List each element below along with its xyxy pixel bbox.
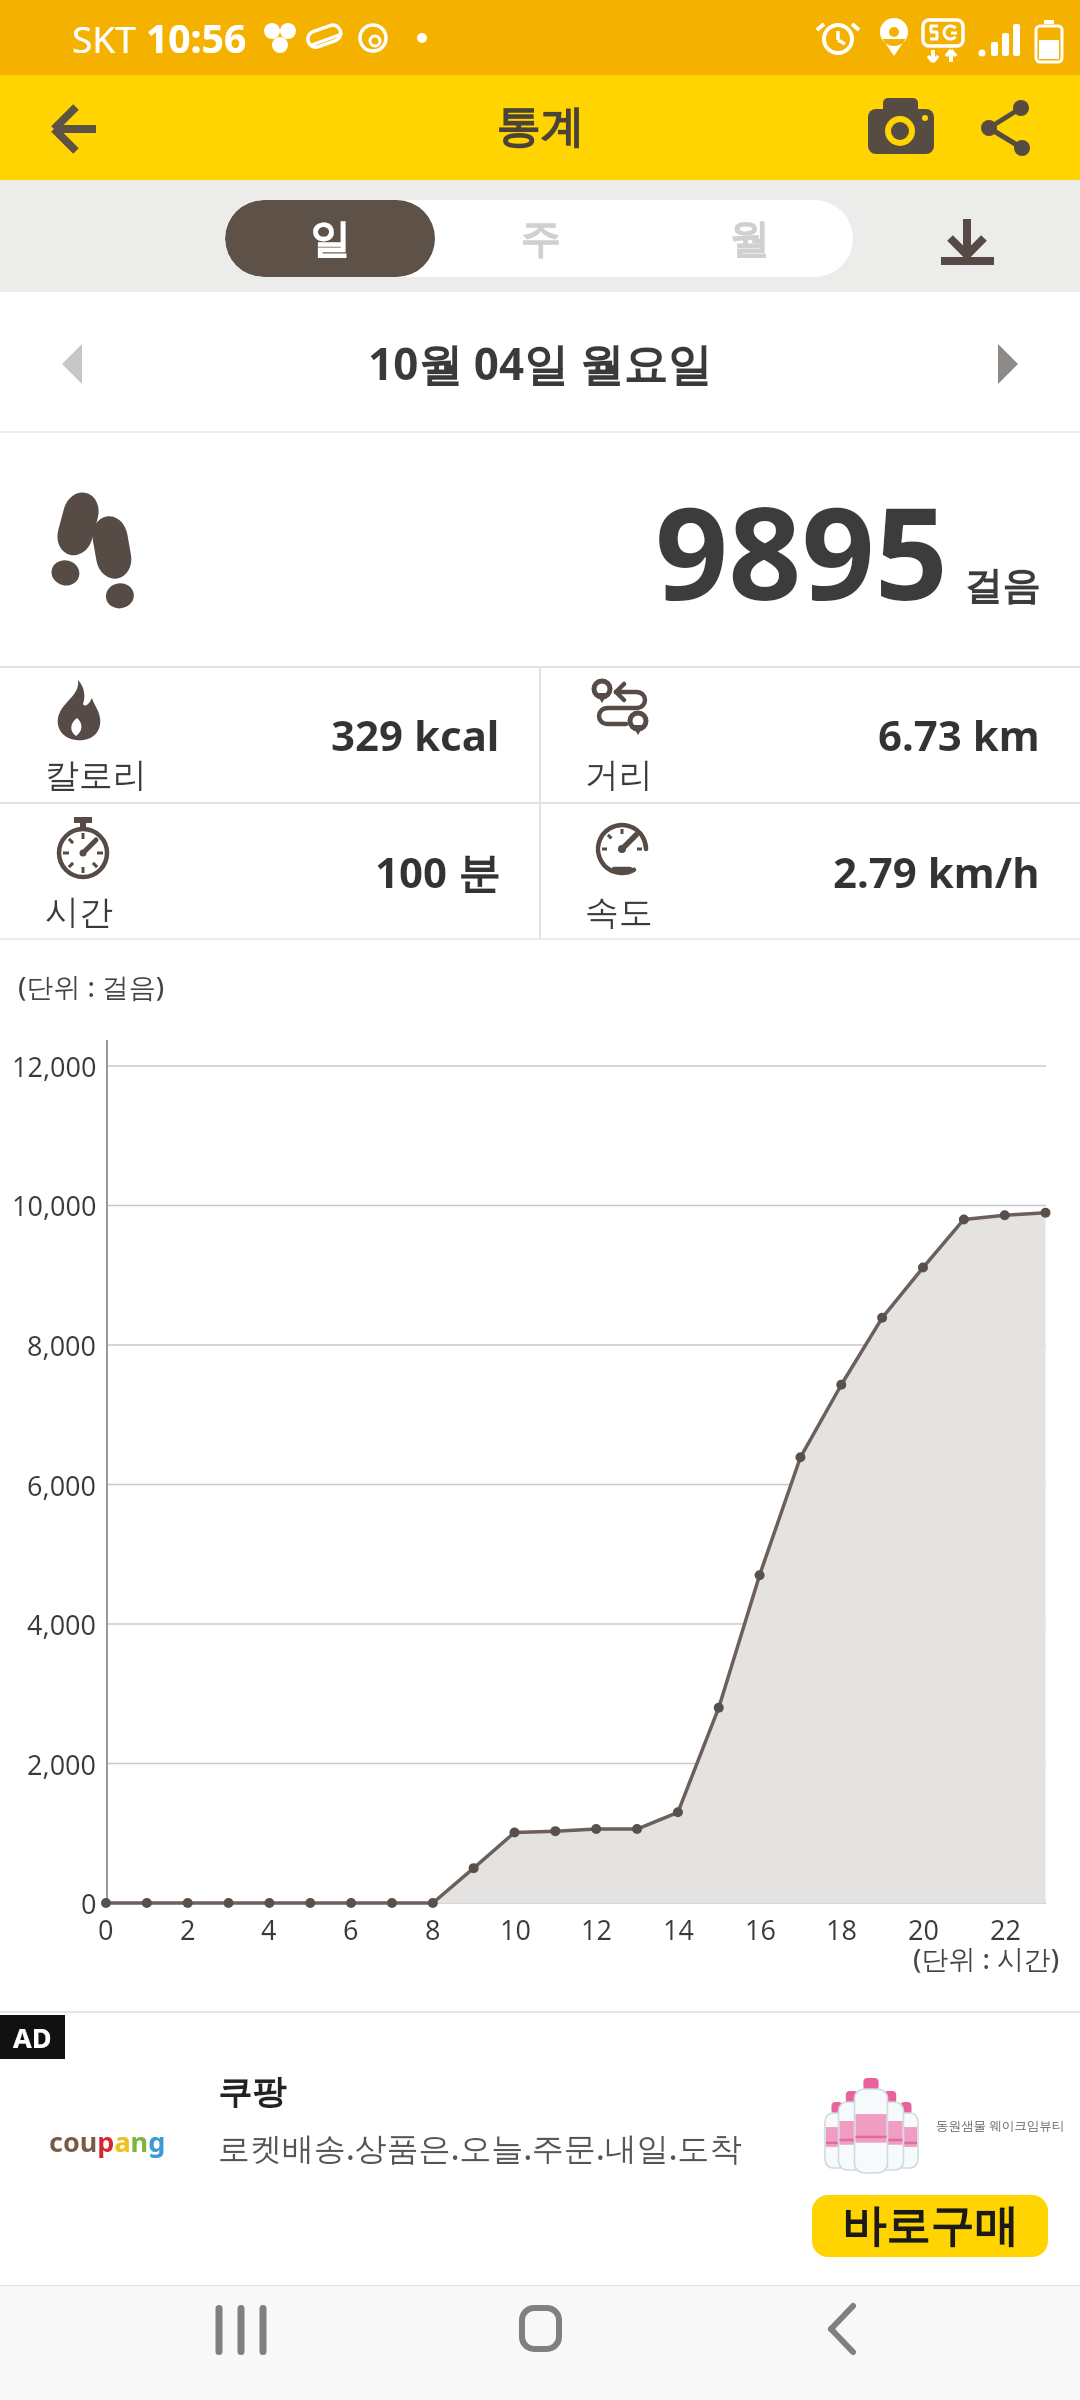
staticText: 20	[908, 1911, 939, 1948]
staticText: 주	[520, 214, 560, 264]
staticText: 329 kcal	[331, 706, 500, 763]
button[interactable]	[972, 95, 1042, 160]
staticText: (단위 : 걸음)	[18, 968, 165, 1005]
staticText: 2	[180, 1911, 196, 1948]
staticText: 시간	[45, 891, 113, 934]
staticText: 칼로리	[45, 754, 147, 797]
staticText: 10,000	[12, 1187, 97, 1224]
staticText: 10	[500, 1911, 531, 1948]
button[interactable]: AD	[0, 2011, 1080, 2285]
staticText: (단위 : 시간)	[913, 1940, 1060, 1977]
staticText: 14	[663, 1911, 694, 1948]
staticText: 바로구매	[842, 2199, 1018, 2254]
button[interactable]: 일	[225, 200, 435, 277]
staticText: coupang	[49, 2123, 166, 2160]
staticText: 걸음	[964, 562, 1040, 610]
button[interactable]: 바로구매	[812, 2195, 1048, 2257]
staticText: 2,000	[27, 1746, 97, 1783]
staticText: 6,000	[27, 1467, 97, 1504]
staticText: 월	[729, 214, 769, 264]
staticText: 18	[826, 1911, 857, 1948]
staticText: 속도	[585, 891, 653, 934]
staticText: 100 분	[375, 843, 500, 900]
staticText: 10월 04일 월요일	[368, 333, 712, 393]
button[interactable]	[930, 210, 1004, 270]
button[interactable]	[976, 332, 1040, 396]
staticText: 8,000	[27, 1327, 97, 1364]
staticText: 16	[745, 1911, 776, 1948]
staticText: 12,000	[12, 1048, 97, 1085]
staticText: 일	[310, 214, 350, 264]
staticText: 동원샘물 웨이크임뷰티	[936, 2117, 1065, 2134]
staticText: 22	[990, 1911, 1021, 1948]
staticText: 8	[425, 1911, 441, 1948]
button[interactable]	[490, 2285, 590, 2400]
staticText: 6	[343, 1911, 359, 1948]
staticText: 2.79 km/h	[833, 843, 1040, 900]
button[interactable]	[790, 2285, 890, 2400]
staticText: 거리	[585, 754, 653, 797]
button[interactable]: 주	[435, 200, 644, 277]
button[interactable]	[862, 93, 942, 163]
staticText: 9895	[655, 463, 948, 637]
staticText: 4	[261, 1911, 277, 1948]
staticText: 0	[98, 1911, 114, 1948]
button[interactable]	[190, 2285, 290, 2400]
staticText: 4,000	[27, 1606, 97, 1643]
staticText: 통계	[496, 100, 584, 155]
staticText: 12	[581, 1911, 612, 1948]
staticText: SKT	[72, 13, 146, 63]
staticText: AD	[13, 2019, 52, 2056]
staticText: 0	[81, 1885, 97, 1922]
staticText: 6.73 km	[878, 706, 1040, 763]
staticText: 10:56	[146, 11, 247, 64]
button[interactable]	[30, 100, 120, 160]
button[interactable]	[40, 332, 104, 396]
staticText: 쿠팡	[218, 2071, 286, 2114]
button[interactable]: 월	[644, 200, 853, 277]
staticText: 로켓배송.상품은.오늘.주문.내일.도착	[218, 2126, 742, 2170]
